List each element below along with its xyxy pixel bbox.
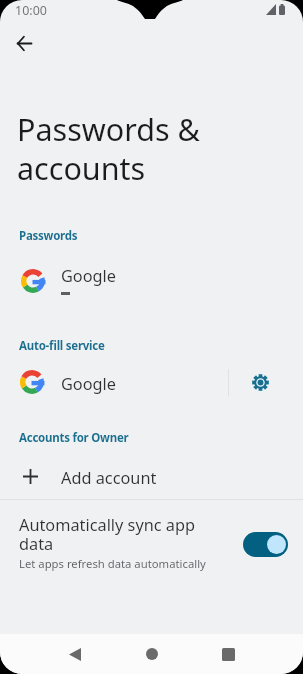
staticText: Accounts for Owner bbox=[19, 430, 129, 446]
button[interactable]: Google bbox=[0, 254, 303, 306]
button[interactable]: Add account bbox=[0, 456, 303, 496]
staticText: Google bbox=[61, 265, 117, 287]
button[interactable]: Auto-fill settings bbox=[240, 362, 280, 402]
staticText: Passwords & accounts bbox=[17, 108, 200, 189]
button[interactable]: Automatically sync app data bbox=[243, 532, 288, 557]
button[interactable]: Recent apps bbox=[208, 634, 248, 674]
staticText: Auto-fill service bbox=[19, 338, 105, 354]
button[interactable]: Navigate up bbox=[4, 23, 44, 63]
staticText: Let apps refresh data automatically bbox=[19, 556, 206, 571]
staticText: Passwords bbox=[19, 228, 78, 244]
button[interactable]: Back bbox=[55, 634, 95, 674]
button[interactable]: Automatically sync app data bbox=[0, 500, 303, 580]
staticText: Google bbox=[61, 373, 117, 395]
staticText: 10:00 bbox=[15, 2, 47, 19]
staticText: Add account bbox=[61, 467, 157, 489]
staticText: Automatically sync app data bbox=[19, 514, 196, 554]
button[interactable]: Google bbox=[0, 362, 303, 402]
button[interactable]: Home bbox=[132, 634, 172, 674]
